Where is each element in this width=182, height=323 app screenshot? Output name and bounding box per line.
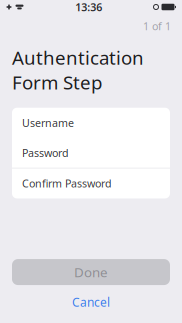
button[interactable]: Done [12, 259, 170, 285]
staticText: 13:36 [75, 0, 102, 14]
staticText: 1 of 1 [143, 19, 171, 33]
staticText: Authentication Form Step [12, 45, 144, 95]
button[interactable]: Confirm Password [12, 168, 170, 198]
button[interactable]: Cancel [58, 289, 124, 315]
staticText: Cancel [72, 294, 110, 310]
staticText: Username [22, 116, 74, 130]
button[interactable]: Password [12, 138, 170, 168]
staticText: Confirm Password [22, 176, 112, 191]
staticText: Done [74, 263, 108, 281]
staticText: Password [22, 146, 69, 160]
button[interactable]: Username [12, 108, 170, 138]
